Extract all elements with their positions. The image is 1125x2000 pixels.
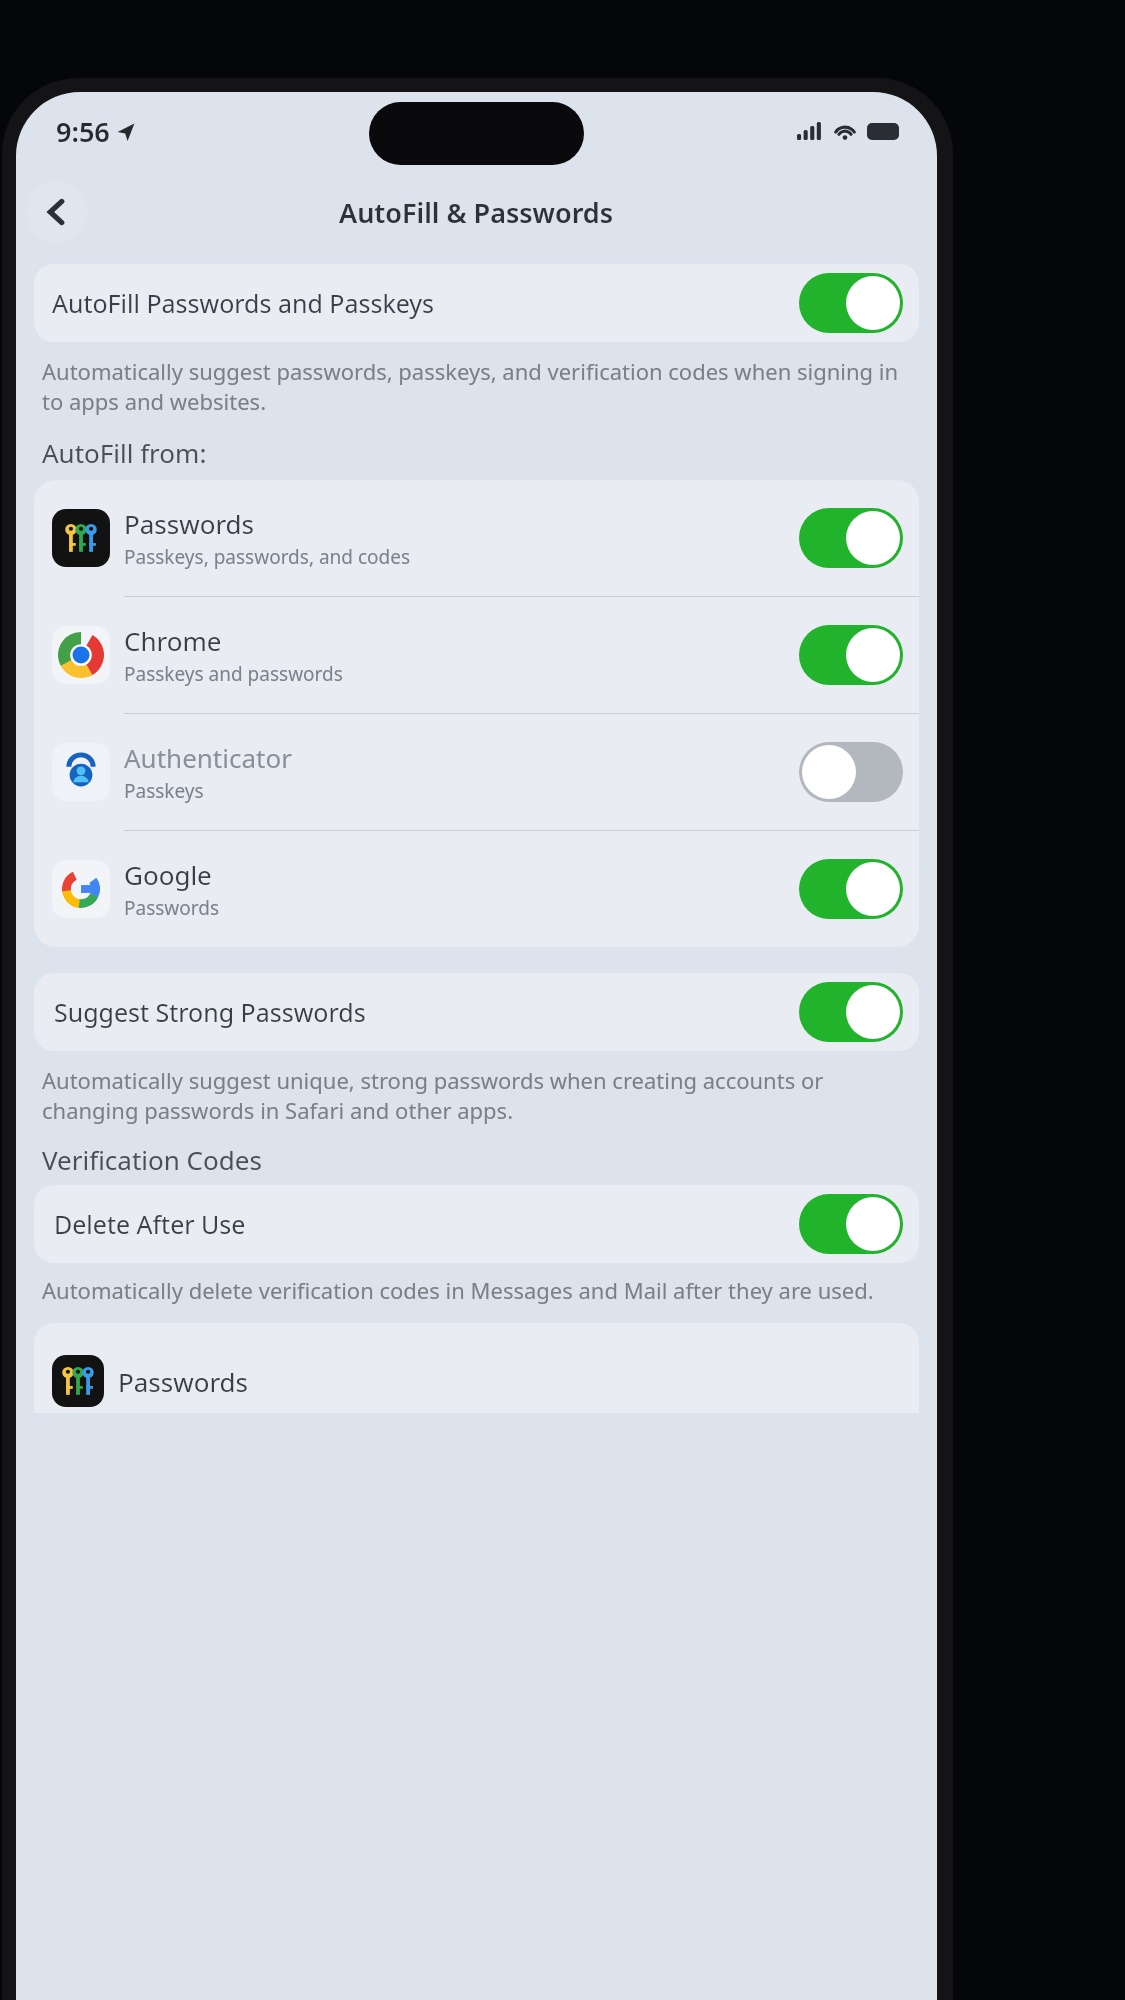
staticText: Verification Codes (42, 1142, 937, 1177)
button[interactable]: AutoFill Passwords and Passkeys (34, 264, 919, 342)
staticText: Authenticator (124, 740, 292, 775)
staticText: Chrome (124, 623, 222, 658)
staticText: Suggest Strong Passwords (54, 995, 366, 1029)
staticText: AutoFill Passwords and Passkeys (52, 286, 435, 320)
staticText: 9:56 (56, 113, 110, 150)
button[interactable]: On (799, 1194, 903, 1254)
button[interactable]: Delete After Use (34, 1185, 919, 1263)
staticText: AutoFill from: (42, 435, 937, 470)
button[interactable]: On (799, 508, 903, 568)
staticText: Google (124, 857, 212, 892)
staticText: Automatically suggest unique, strong pas… (42, 1065, 907, 1126)
button[interactable]: Suggest Strong Passwords (34, 973, 919, 1051)
staticText: Passkeys and passwords (124, 661, 343, 687)
button[interactable]: Chrome (34, 597, 919, 713)
button[interactable]: On (799, 273, 903, 333)
button[interactable]: Authenticator (34, 714, 919, 830)
staticText: Automatically suggest passwords, passkey… (42, 356, 907, 417)
staticText: Passkeys (124, 778, 204, 804)
staticText: Passwords (124, 506, 255, 541)
staticText: Passkeys, passwords, and codes (124, 544, 411, 570)
button[interactable]: On (799, 982, 903, 1042)
staticText: Passwords (124, 895, 220, 921)
staticText: Automatically delete verification codes … (42, 1275, 907, 1305)
staticText: AutoFill & Passwords (339, 194, 614, 231)
button[interactable]: Passwords (34, 1323, 919, 1413)
button[interactable]: Passwords (34, 480, 919, 596)
button[interactable]: On (799, 625, 903, 685)
button[interactable]: Back (26, 181, 88, 243)
staticText: Delete After Use (54, 1207, 246, 1241)
button[interactable]: Google (34, 831, 919, 947)
button[interactable]: On (799, 859, 903, 919)
button[interactable]: Off (799, 742, 903, 802)
staticText: Passwords (118, 1364, 249, 1399)
